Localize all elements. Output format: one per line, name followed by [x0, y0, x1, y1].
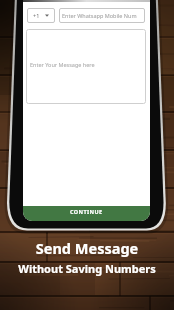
- staticText: +1: [33, 12, 40, 19]
- staticText: Enter Your Message here: [30, 61, 95, 68]
- button[interactable]: CONTINUE: [23, 206, 150, 221]
- staticText: CONTINUE: [70, 208, 103, 215]
- staticText: Send Message: [0, 238, 174, 258]
- button[interactable]: Enter Whatsapp Mobile Num: [59, 8, 145, 23]
- staticText: Enter Whatsapp Mobile Num: [62, 12, 137, 19]
- staticText: Without Saving Numbers: [0, 261, 174, 276]
- button[interactable]: Enter Your Message here: [26, 29, 146, 104]
- button[interactable]: +1: [27, 8, 55, 23]
